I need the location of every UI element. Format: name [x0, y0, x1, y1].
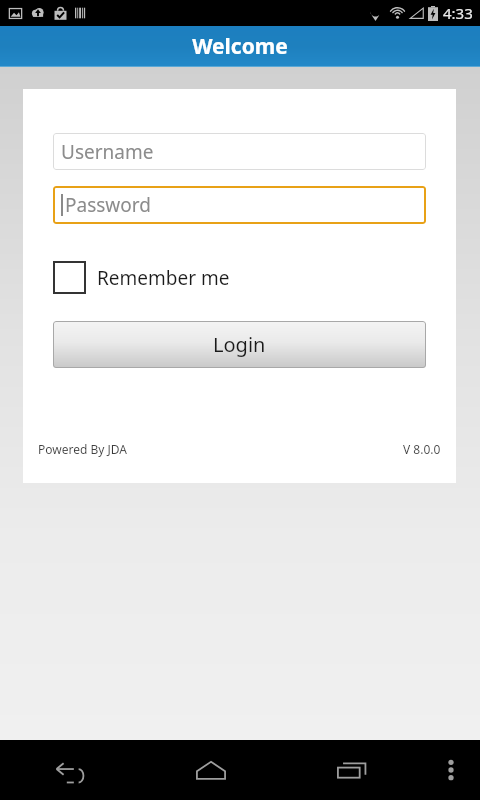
staticText: Username [61, 139, 154, 165]
button[interactable]: Login [53, 321, 426, 368]
staticText: Welcome [192, 32, 288, 61]
staticText: 4:33 [443, 3, 473, 23]
staticText: Login [213, 331, 266, 358]
button[interactable]: Back [0, 740, 140, 800]
button[interactable]: Password [53, 186, 426, 224]
button[interactable]: Recent apps [281, 740, 422, 800]
button[interactable]: More options [422, 740, 480, 800]
button[interactable]: Home [140, 740, 281, 800]
staticText: V 8.0.0 [403, 441, 441, 457]
staticText: Remember me [97, 265, 230, 291]
staticText: Powered By JDA [38, 441, 127, 457]
staticText: Password [65, 192, 151, 218]
button[interactable]: Remember me [53, 261, 230, 294]
button[interactable]: Username [53, 133, 426, 170]
